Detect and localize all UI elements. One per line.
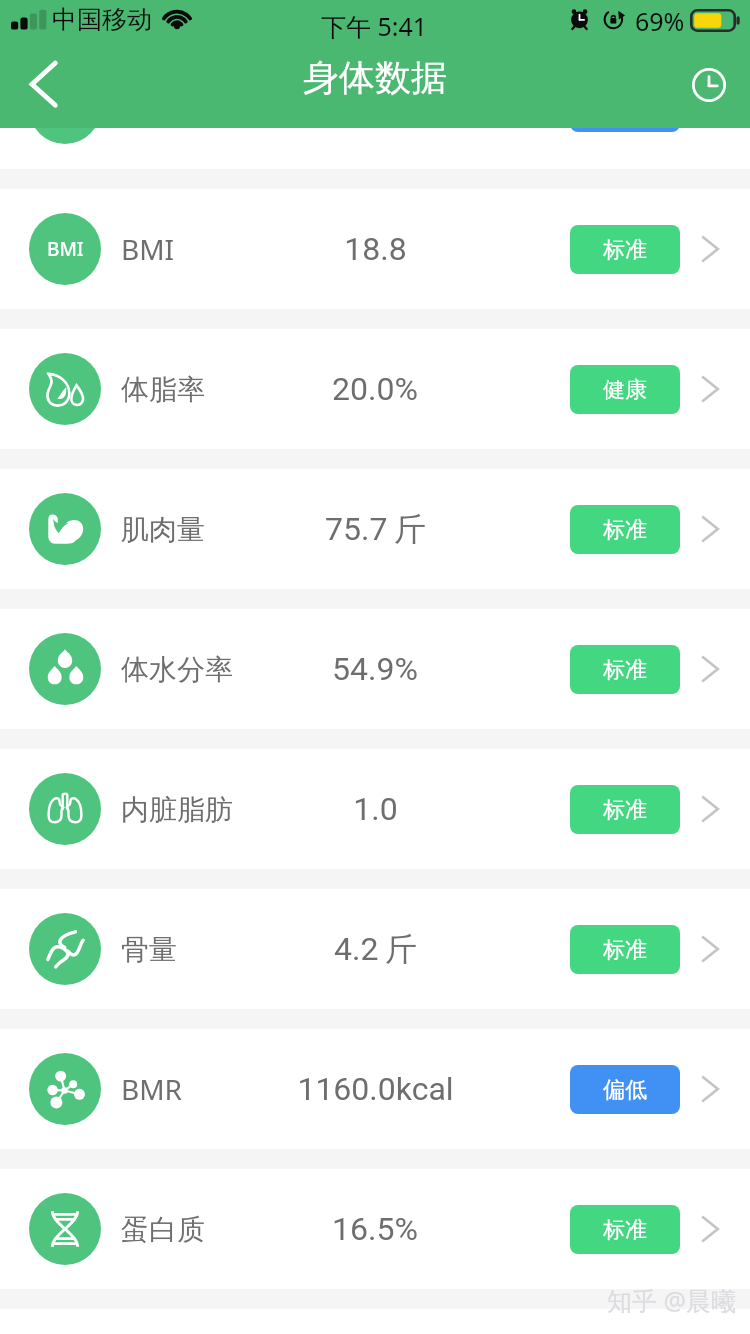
button[interactable]: BMI <box>0 189 750 309</box>
button[interactable]: 内脏脂肪 <box>0 749 750 869</box>
button[interactable]: 标准 <box>570 505 680 554</box>
button[interactable]: 健康 <box>570 365 680 414</box>
button[interactable]: 标准 <box>570 225 680 274</box>
button[interactable]: 蛋白质 <box>0 1169 750 1289</box>
staticText: BMR <box>121 1070 183 1108</box>
button[interactable]: 体水分率 <box>0 609 750 729</box>
button[interactable]: History <box>666 44 750 128</box>
button[interactable]: 体脂率 <box>0 329 750 449</box>
staticText: 体脂率 <box>121 372 205 407</box>
staticText: 体水分率 <box>121 652 233 687</box>
button[interactable]: 标准 <box>570 645 680 694</box>
staticText: BMI <box>121 230 175 268</box>
button[interactable]: 骨量 <box>0 889 750 1009</box>
staticText: 标准 <box>603 516 647 544</box>
button[interactable]: 标准 <box>570 1205 680 1254</box>
staticText: 54.9% <box>332 650 418 688</box>
staticText: 知乎 @晨曦 <box>607 1283 736 1317</box>
staticText: 69% <box>635 4 685 38</box>
button[interactable]: BMR <box>0 1029 750 1149</box>
button[interactable]: 标准 <box>570 925 680 974</box>
staticText: 身体数据 <box>303 55 447 100</box>
staticText: 16.5% <box>332 1210 418 1248</box>
staticText: 标准 <box>603 936 647 964</box>
staticText: 标准 <box>603 796 647 824</box>
staticText: 下午 5:41 <box>321 9 428 43</box>
staticText: 内脏脂肪 <box>121 792 233 827</box>
staticText: 1.0 <box>353 790 398 828</box>
staticText: 骨量 <box>121 932 177 967</box>
staticText: 标准 <box>603 1216 647 1244</box>
button[interactable]: Back <box>0 44 84 128</box>
staticText: 20.0% <box>332 370 418 408</box>
button[interactable]: 标准 <box>570 785 680 834</box>
staticText: 蛋白质 <box>121 1212 205 1247</box>
staticText: 标准 <box>603 656 647 684</box>
staticText: 健康 <box>603 376 647 404</box>
button[interactable]: 偏低 <box>570 1065 680 1114</box>
staticText: BMI <box>47 236 84 262</box>
staticText: 4.2 斤 <box>334 929 417 969</box>
button[interactable]: 肌肉量 <box>0 469 750 589</box>
staticText: 偏低 <box>603 1076 647 1104</box>
staticText: 1160.0kcal <box>297 1070 454 1108</box>
staticText: 标准 <box>603 236 647 264</box>
staticText: 中国移动 <box>52 4 152 35</box>
staticText: 18.8 <box>344 230 407 268</box>
staticText: 肌肉量 <box>121 512 205 547</box>
staticText: 75.7 斤 <box>325 509 426 549</box>
